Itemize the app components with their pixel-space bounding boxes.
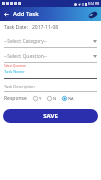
button[interactable]: Task Description: [4, 84, 97, 92]
button[interactable]: --Select Category--: [4, 38, 97, 48]
button[interactable]: Back: [2, 10, 11, 19]
staticText: SAVE: [43, 112, 58, 120]
button[interactable]: Task Name: [4, 69, 97, 79]
staticText: --Select Question--: [4, 53, 93, 60]
button[interactable]: Y: [33, 96, 42, 101]
button[interactable]: N: [47, 96, 57, 101]
staticText: Select Question: [4, 64, 26, 68]
staticText: Task Description: [4, 84, 35, 89]
staticText: N: [53, 96, 57, 101]
button[interactable]: Profile: [87, 9, 98, 20]
staticText: 2017-11-08: [32, 24, 59, 31]
button[interactable]: NA: [62, 96, 74, 101]
staticText: --Select Category--: [4, 38, 93, 45]
staticText: NA: [68, 96, 74, 101]
staticText: Y: [39, 96, 42, 101]
staticText: Task Name: [4, 69, 25, 74]
staticText: Task Date:: [4, 24, 28, 31]
staticText: 8:14 PM: [88, 2, 100, 6]
staticText: Add Task: [13, 10, 39, 18]
staticText: Response: [4, 95, 27, 102]
button[interactable]: SAVE: [3, 109, 98, 123]
button[interactable]: --Select Question--: [4, 53, 97, 63]
